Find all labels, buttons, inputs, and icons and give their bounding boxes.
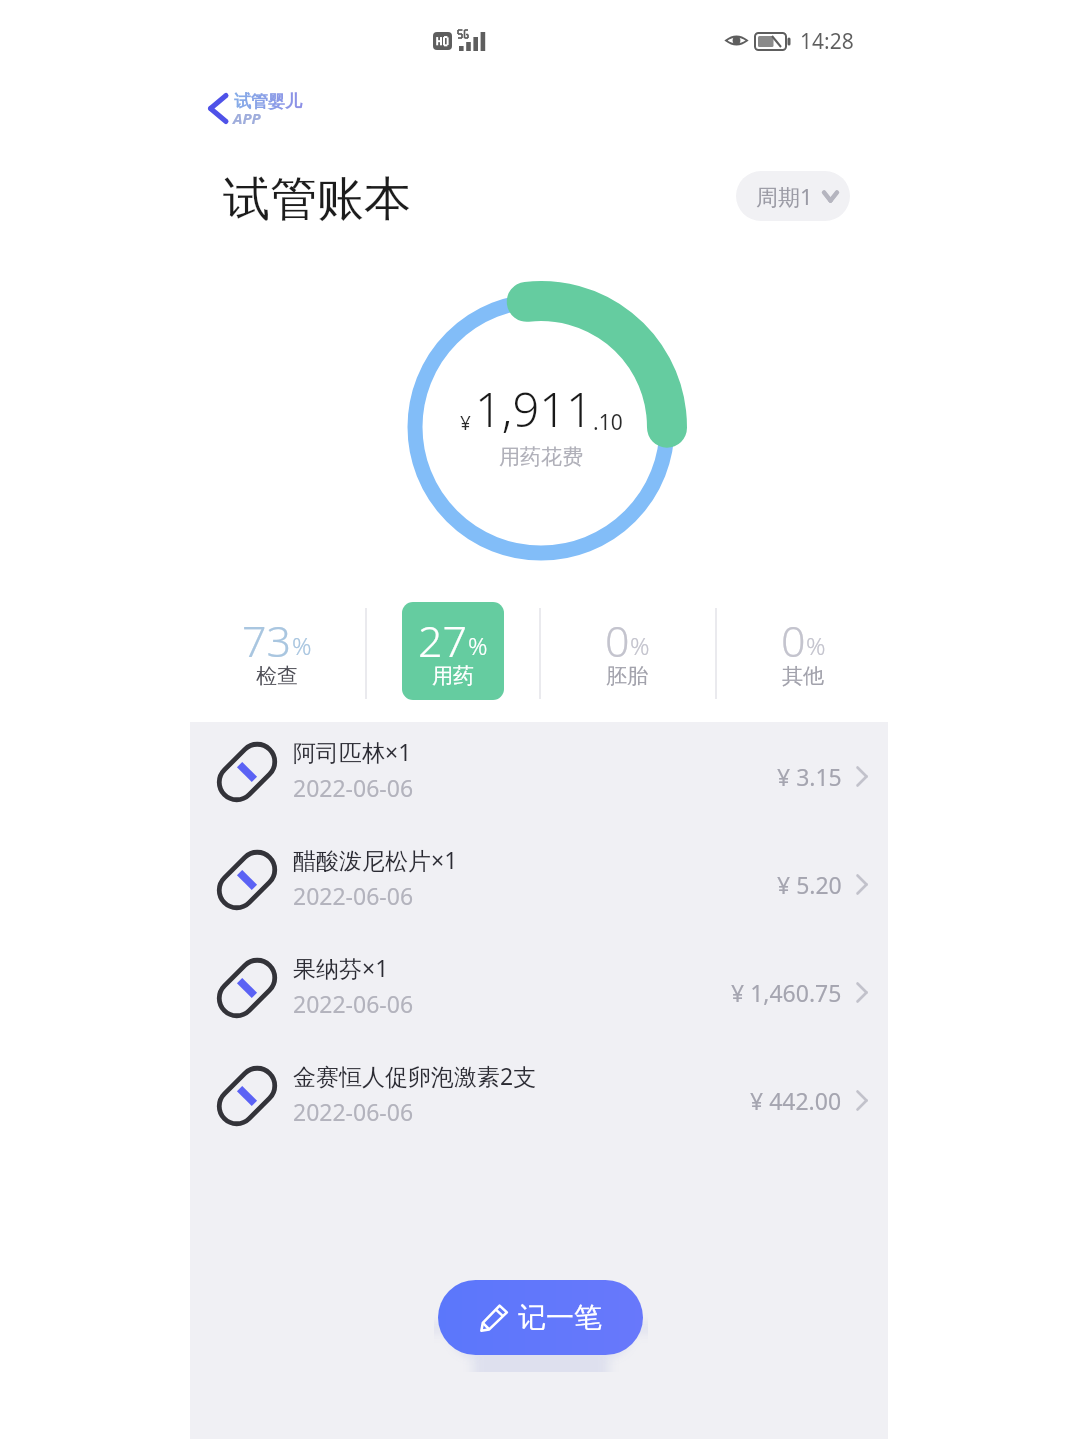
staticText: ¥ 442.00 [750, 1085, 842, 1116]
staticText: 周期1 [756, 181, 813, 211]
staticText: 果纳芬×1 [293, 952, 389, 983]
staticText: .10 [593, 408, 623, 437]
staticText: 试管婴儿 [234, 91, 302, 112]
staticText: 14:28 [800, 27, 854, 56]
staticText: 检查 [256, 663, 298, 689]
staticText: 用药 [432, 663, 474, 689]
button[interactable]: 周期1 [736, 171, 850, 221]
staticText: ¥ 5.20 [777, 869, 842, 900]
staticText: 27 [418, 611, 468, 670]
staticText: % [630, 629, 650, 662]
staticText: 2022-06-06 [293, 988, 414, 1019]
staticText: % [468, 629, 488, 662]
button[interactable]: Back [196, 84, 240, 132]
staticText: 胚胎 [606, 663, 648, 689]
staticText: 0 [781, 611, 806, 670]
staticText: 金赛恒人促卵泡激素2支 [293, 1060, 537, 1091]
button[interactable]: 醋酸泼尼松片×1 [190, 830, 888, 938]
staticText: 1,911 [475, 377, 593, 441]
staticText: % [806, 629, 826, 662]
button[interactable]: 果纳芬×1 [190, 938, 888, 1046]
button[interactable]: 0 [565, 602, 689, 700]
staticText: 阿司匹林×1 [293, 736, 412, 767]
button[interactable]: 27 [402, 602, 504, 700]
button[interactable]: 金赛恒人促卵泡激素2支 [190, 1046, 888, 1154]
staticText: APP [233, 108, 261, 128]
staticText: 记一笔 [518, 1300, 602, 1335]
staticText: 0 [605, 611, 630, 670]
staticText: 2022-06-06 [293, 880, 414, 911]
staticText: 其他 [782, 663, 824, 689]
button[interactable]: 0 [741, 602, 865, 700]
staticText: 2022-06-06 [293, 772, 414, 803]
staticText: % [292, 629, 312, 662]
staticText: 醋酸泼尼松片×1 [293, 844, 458, 875]
staticText: ¥ [460, 410, 471, 436]
button[interactable]: 阿司匹林×1 [190, 722, 888, 830]
button[interactable]: 记一笔 [438, 1280, 643, 1355]
button[interactable]: 73 [215, 602, 339, 700]
staticText: 2022-06-06 [293, 1096, 414, 1127]
staticText: 73 [242, 611, 292, 670]
staticText: ¥ 3.15 [777, 761, 842, 792]
staticText: 用药花费 [499, 444, 583, 470]
staticText: ¥ 1,460.75 [731, 977, 842, 1008]
staticText: 试管账本 [223, 170, 411, 229]
